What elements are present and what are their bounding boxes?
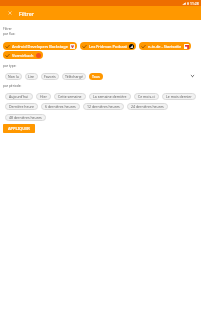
button[interactable]: La semaine dernière: [89, 93, 131, 100]
staticText: Le mois dernier: [166, 94, 192, 99]
button[interactable]: Non lu: [5, 73, 22, 80]
button[interactable]: Lire: [25, 73, 38, 80]
button[interactable]: Favoris: [41, 73, 59, 80]
staticText: 12 dernières heures: [87, 104, 120, 109]
staticText: 6 dernières heures: [45, 104, 76, 109]
button[interactable]: Cette semaine: [54, 93, 86, 100]
button[interactable]: Téléchargé: [62, 73, 86, 80]
button[interactable]: n-tv.de - Startseite: [139, 42, 191, 50]
staticText: 11:28: [190, 1, 199, 6]
staticText: Hier: [40, 94, 47, 99]
staticText: n-tv.de - Startseite: [148, 44, 182, 49]
button[interactable]: Dernière heure: [5, 103, 38, 110]
staticText: Cette semaine: [58, 94, 82, 99]
staticText: La semaine dernière: [93, 94, 127, 99]
staticText: Tous: [92, 74, 100, 79]
staticText: Dernière heure: [9, 104, 34, 109]
staticText: 24 dernières heures: [131, 104, 164, 109]
button[interactable]: 6 dernières heures: [41, 103, 80, 110]
button[interactable]: Le mois dernier: [162, 93, 196, 100]
button[interactable]: Aujourd'hui: [5, 93, 33, 100]
button[interactable]: Vsemirbach: [3, 51, 43, 59]
staticText: Ce mois-ci: [138, 94, 155, 99]
staticText: par type:: [3, 64, 17, 68]
button[interactable]: Hier: [36, 93, 51, 100]
staticText: Favoris: [44, 74, 56, 79]
button[interactable]: Lex Fridman Podcast: [80, 42, 136, 50]
button[interactable]: 24 dernières heures: [127, 103, 168, 110]
button[interactable]: APPLIQUER: [3, 124, 35, 133]
button[interactable]: 12 dernières heures: [83, 103, 124, 110]
button[interactable]: Tous: [89, 73, 103, 80]
staticText: Téléchargé: [65, 74, 83, 79]
button[interactable]: Expand: [188, 71, 197, 80]
button[interactable]: Android Developers Backstage: [3, 42, 77, 50]
staticText: Aujourd'hui: [9, 94, 29, 99]
staticText: Filtrer: [19, 10, 34, 17]
staticText: Filtrer: [3, 27, 12, 31]
staticText: Vsemirbach: [12, 53, 34, 58]
staticText: 48 dernières heures: [9, 115, 42, 120]
staticText: APPLIQUER: [8, 126, 30, 131]
button[interactable]: Close: [0, 6, 19, 20]
button[interactable]: 48 dernières heures: [5, 114, 46, 121]
staticText: Lire: [28, 74, 35, 79]
staticText: par période:: [3, 84, 22, 88]
staticText: Non lu: [8, 74, 19, 79]
button[interactable]: Ce mois-ci: [134, 93, 159, 100]
staticText: par flux:: [3, 32, 16, 36]
staticText: Android Developers Backstage: [12, 44, 68, 49]
staticText: Lex Fridman Podcast: [89, 44, 127, 49]
